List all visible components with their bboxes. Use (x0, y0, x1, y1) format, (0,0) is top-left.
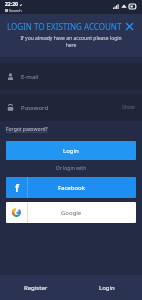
button[interactable]: Register (0, 275, 71, 300)
button[interactable]: E-mail (0, 63, 142, 90)
staticText: Password (21, 104, 49, 112)
staticText: Search (9, 8, 22, 13)
staticText: Google (61, 209, 82, 217)
staticText: LOGIN TO EXISTING ACCOUNT (7, 21, 124, 32)
button[interactable]: Password (0, 94, 142, 121)
staticText: Login (63, 147, 79, 155)
button[interactable]: Login (6, 141, 136, 160)
staticText: Login (99, 284, 115, 292)
button[interactable]: f (6, 177, 136, 198)
staticText: Or login with (0, 165, 142, 172)
button[interactable]: Forgot password? (6, 125, 48, 134)
button[interactable]: Login (71, 275, 142, 300)
button[interactable]: Google (6, 202, 136, 223)
staticText: E-mail (21, 73, 39, 81)
staticText: Register (24, 284, 48, 292)
staticText: 22:20 (5, 1, 18, 8)
staticText: Facebook (58, 184, 85, 192)
staticText: f (15, 181, 19, 195)
button[interactable]: Close (124, 21, 135, 32)
button[interactable]: Show (122, 104, 135, 111)
staticText: If you already have an account please lo… (15, 35, 127, 49)
staticText: Forgot password? (6, 126, 48, 133)
